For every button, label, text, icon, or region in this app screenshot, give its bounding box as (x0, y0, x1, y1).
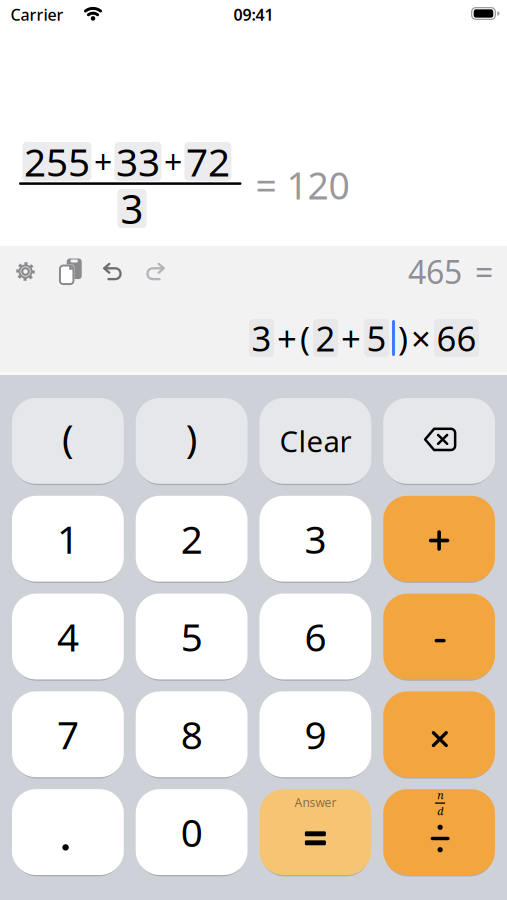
staticText: + (94, 140, 112, 183)
staticText: 3 (120, 182, 143, 235)
staticText: Carrier (10, 4, 63, 25)
staticText: Clear (279, 421, 351, 460)
button[interactable]: Copy (56, 258, 82, 285)
button[interactable]: Open parenthesis (12, 398, 124, 484)
staticText: ) (186, 412, 198, 463)
button[interactable]: 5 (136, 594, 248, 679)
staticText: ( (62, 412, 74, 463)
button[interactable]: Divide (383, 789, 495, 875)
staticText: 6 (304, 611, 326, 662)
button[interactable]: Settings (14, 260, 36, 282)
staticText: 2 (315, 315, 335, 361)
staticText: 72 (186, 136, 230, 187)
staticText: d (437, 804, 443, 818)
button[interactable]: Minus (383, 594, 495, 679)
button[interactable]: 9 (259, 691, 371, 777)
staticText: 2 (181, 513, 203, 564)
button[interactable]: 3 (259, 496, 371, 582)
staticText: 09:41 (233, 4, 273, 25)
staticText: ( (300, 316, 310, 360)
staticText: ) (398, 316, 408, 360)
staticText: 5 (366, 315, 386, 361)
button[interactable]: 0 (136, 789, 248, 875)
button[interactable]: 4 (12, 594, 124, 679)
staticText: 4 (57, 611, 79, 662)
button[interactable]: Plus (383, 496, 495, 582)
button[interactable]: Delete (383, 398, 495, 484)
button[interactable]: Clear (259, 398, 371, 484)
button[interactable]: 6 (259, 594, 371, 679)
staticText: Answer (294, 794, 336, 810)
button[interactable]: Redo (145, 263, 166, 280)
staticText: = (475, 250, 493, 293)
button[interactable]: Equals (259, 789, 371, 875)
staticText: 66 (436, 315, 476, 361)
staticText: × (411, 315, 431, 361)
staticText: 3 (304, 513, 326, 564)
staticText: + (341, 315, 361, 361)
button[interactable]: Multiply (383, 691, 495, 777)
staticText: = 120 (255, 160, 349, 210)
staticText: 3 (251, 315, 271, 361)
staticText: + (164, 140, 182, 183)
button[interactable]: 8 (136, 691, 248, 777)
button[interactable]: 2 (136, 496, 248, 582)
staticText: 465 (408, 250, 462, 293)
staticText: n (437, 788, 443, 802)
staticText: 255 (24, 136, 90, 187)
staticText: 5 (181, 611, 203, 662)
staticText: + (277, 315, 297, 361)
button[interactable]: Decimal point (12, 789, 124, 875)
staticText: 0 (181, 806, 203, 858)
button[interactable]: 1 (12, 496, 124, 582)
staticText: 33 (116, 136, 160, 187)
button[interactable]: Close parenthesis (136, 398, 248, 484)
staticText: 8 (181, 709, 203, 760)
button[interactable]: 7 (12, 691, 124, 777)
staticText: 9 (304, 709, 326, 760)
button[interactable]: Undo (102, 263, 123, 280)
staticText: 7 (57, 709, 79, 760)
staticText: 1 (57, 513, 79, 564)
